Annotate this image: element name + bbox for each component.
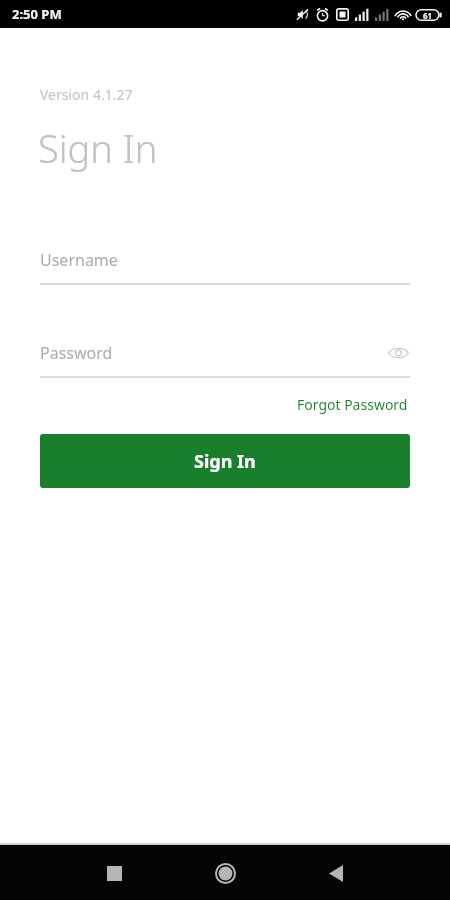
staticText: Sign In (38, 122, 158, 174)
button[interactable]: Sign In (40, 434, 410, 488)
button[interactable]: Username (40, 247, 410, 285)
button[interactable]: Recents (92, 851, 136, 895)
button[interactable]: Show password (386, 341, 410, 365)
button[interactable]: Password (40, 340, 410, 378)
staticText: Password (40, 342, 113, 364)
staticText: 2:50 PM (12, 5, 62, 23)
staticText: Sign In (194, 449, 256, 474)
staticText: Forgot Password (297, 395, 408, 414)
button[interactable]: Home (203, 851, 247, 895)
button[interactable]: Back (314, 851, 358, 895)
button[interactable]: Forgot Password (295, 392, 410, 417)
staticText: 61 (423, 10, 433, 21)
staticText: Version 4.1.27 (40, 85, 133, 104)
staticText: Username (40, 249, 118, 271)
